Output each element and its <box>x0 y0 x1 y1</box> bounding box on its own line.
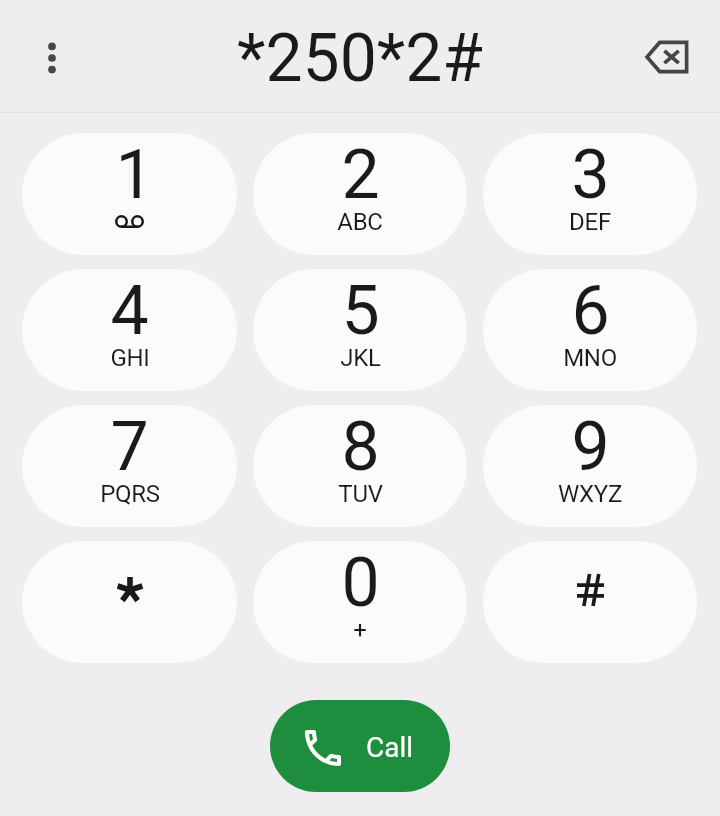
staticText: 0 <box>341 543 380 623</box>
staticText: 8 <box>341 407 380 487</box>
button[interactable]: 5 <box>253 269 467 391</box>
staticText: 2 <box>341 135 380 215</box>
staticText: TUV <box>338 480 383 508</box>
button[interactable]: star <box>22 541 237 663</box>
staticText: + <box>353 616 367 644</box>
button[interactable]: 6 <box>483 269 697 391</box>
staticText: *250*2# <box>237 20 483 97</box>
staticText: ABC <box>337 208 383 236</box>
staticText: Call <box>366 731 414 764</box>
button[interactable]: Call <box>270 700 450 792</box>
button[interactable]: 4 <box>22 269 237 391</box>
button[interactable]: pound <box>483 541 697 663</box>
button[interactable]: 7 <box>22 405 237 527</box>
staticText: 3 <box>571 135 610 215</box>
staticText: 1 <box>115 135 154 215</box>
staticText: JKL <box>340 344 381 372</box>
staticText: 7 <box>110 407 149 487</box>
button[interactable]: 8 <box>253 405 467 527</box>
staticText: WXYZ <box>558 480 622 508</box>
staticText: 4 <box>110 271 149 351</box>
staticText: DEF <box>569 208 611 236</box>
button[interactable]: 1 <box>22 133 237 255</box>
button[interactable]: 3 <box>483 133 697 255</box>
button[interactable]: More options <box>10 16 94 100</box>
button[interactable]: 2 <box>253 133 467 255</box>
button[interactable]: Backspace <box>625 15 709 99</box>
staticText: 5 <box>341 271 380 351</box>
button[interactable]: 9 <box>483 405 697 527</box>
staticText: GHI <box>110 344 150 372</box>
staticText: PQRS <box>100 480 160 508</box>
button[interactable]: 0 <box>253 541 467 663</box>
staticText: MNO <box>563 344 617 372</box>
staticText: 6 <box>571 271 610 351</box>
staticText: 9 <box>571 407 610 487</box>
